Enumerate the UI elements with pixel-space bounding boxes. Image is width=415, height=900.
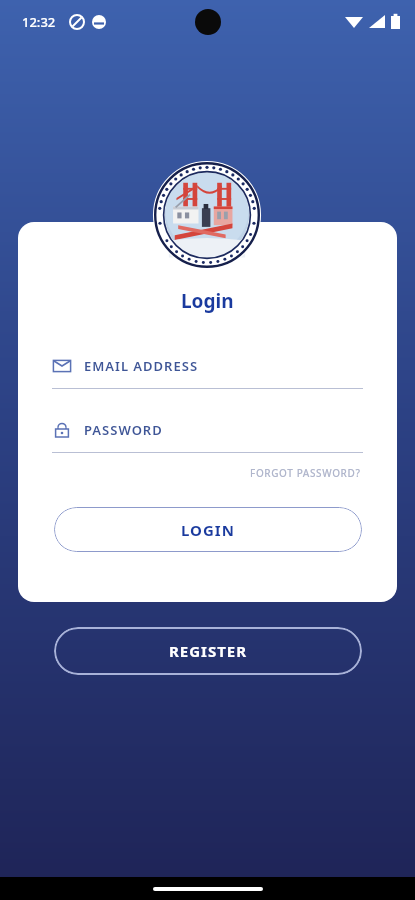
staticText: FORGOT PASSWORD? xyxy=(250,466,361,480)
staticText: PASSWORD xyxy=(84,421,163,439)
button[interactable]: Email xyxy=(52,356,363,389)
staticText: LOGIN xyxy=(181,520,235,540)
other: Email xyxy=(52,356,72,376)
staticText: REGISTER xyxy=(169,641,248,661)
staticText: 12:32 xyxy=(22,13,56,31)
staticText: Login xyxy=(181,288,234,314)
button[interactable]: REGISTER xyxy=(54,627,362,675)
other: Password xyxy=(52,420,72,440)
button[interactable]: Password xyxy=(52,420,363,453)
button[interactable]: FORGOT PASSWORD? xyxy=(248,463,363,483)
staticText: EMAIL ADDRESS xyxy=(84,357,199,375)
button[interactable]: LOGIN xyxy=(54,507,362,552)
